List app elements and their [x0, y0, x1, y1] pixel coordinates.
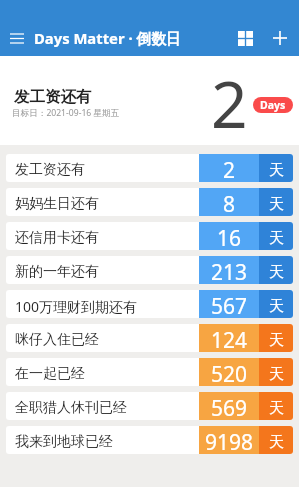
- staticText: 目标日：2021-09-16 星期五: [12, 107, 120, 119]
- staticText: 100万理财到期还有: [15, 297, 138, 316]
- staticText: Days Matter · 倒数日: [34, 28, 181, 48]
- staticText: 569: [211, 394, 248, 420]
- button[interactable]: 我来到地球已经: [6, 426, 293, 454]
- staticText: 天: [269, 195, 284, 214]
- button[interactable]: 发工资还有: [0, 56, 299, 145]
- staticText: 天: [269, 297, 284, 316]
- button[interactable]: 妈妈生日还有: [6, 188, 293, 216]
- button[interactable]: Grid view: [229, 25, 262, 51]
- staticText: 还信用卡还有: [15, 229, 99, 247]
- staticText: 发工资还有: [14, 87, 92, 107]
- staticText: 天: [269, 229, 284, 248]
- staticText: 567: [211, 292, 248, 318]
- staticText: 天: [269, 331, 284, 350]
- staticText: 天: [269, 365, 284, 384]
- staticText: 16: [217, 224, 242, 250]
- staticText: 新的一年还有: [15, 263, 99, 281]
- button[interactable]: 还信用卡还有: [6, 222, 293, 250]
- staticText: 天: [269, 263, 284, 282]
- button[interactable]: 全职猎人休刊已经: [6, 392, 293, 420]
- button[interactable]: 发工资还有: [6, 154, 293, 182]
- staticText: 天: [269, 433, 284, 452]
- button[interactable]: 咪仔入住已经: [6, 324, 293, 352]
- button[interactable]: 100万理财到期还有: [6, 290, 293, 318]
- staticText: 全职猎人休刊已经: [15, 399, 127, 417]
- staticText: 发工资还有: [15, 161, 85, 179]
- staticText: 天: [269, 399, 284, 418]
- staticText: Days: [260, 98, 286, 112]
- staticText: 妈妈生日还有: [15, 195, 99, 213]
- staticText: 天: [269, 161, 284, 180]
- staticText: 我来到地球已经: [15, 433, 113, 451]
- button[interactable]: 在一起已经: [6, 358, 293, 386]
- staticText: 2: [223, 156, 236, 182]
- staticText: 9198: [205, 428, 254, 454]
- button[interactable]: Menu: [0, 25, 34, 51]
- staticText: 咪仔入住已经: [15, 331, 99, 349]
- button[interactable]: Add: [260, 25, 299, 51]
- staticText: 213: [211, 258, 248, 284]
- staticText: 在一起已经: [15, 365, 85, 383]
- staticText: 8: [223, 190, 236, 216]
- staticText: 520: [211, 360, 248, 386]
- staticText: 124: [211, 326, 248, 352]
- staticText: 2: [211, 60, 248, 147]
- button[interactable]: 新的一年还有: [6, 256, 293, 284]
